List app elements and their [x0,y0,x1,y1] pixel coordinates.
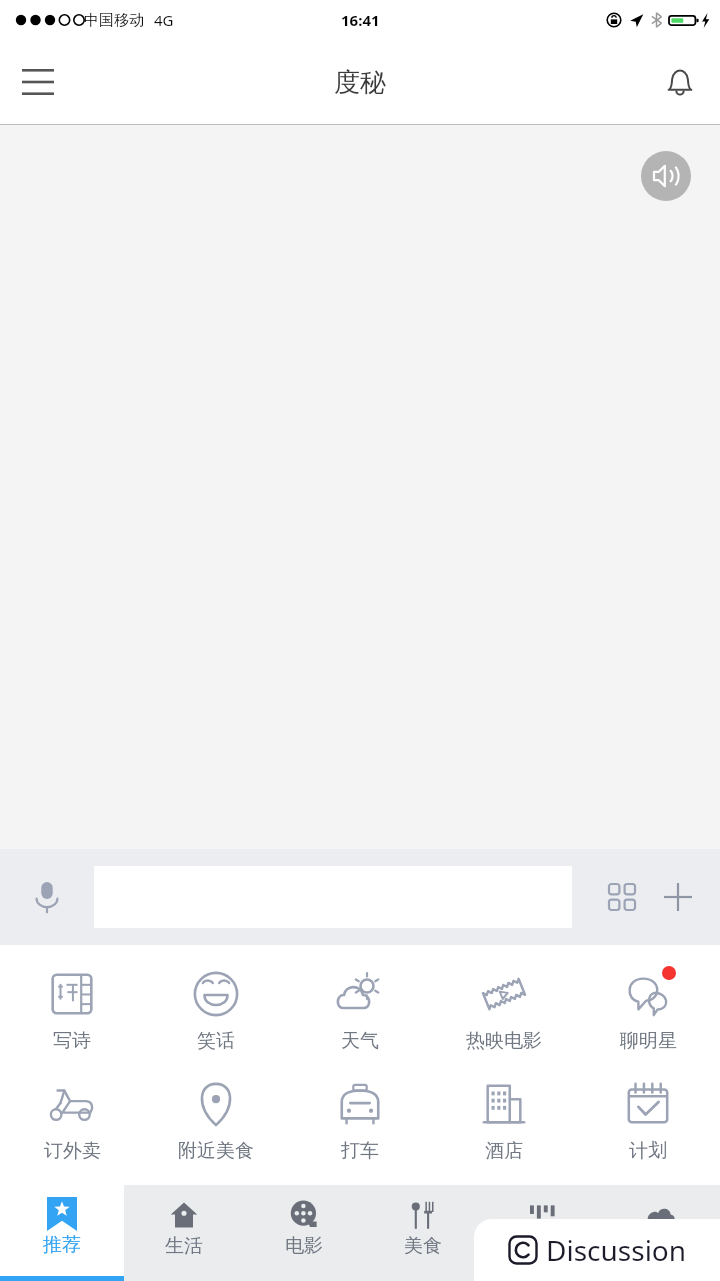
button[interactable]: 美食 [363,1185,482,1281]
button[interactable]: 聊明星 [576,959,720,1059]
button[interactable]: 更多 [601,1185,720,1281]
button[interactable]: 写诗 [0,959,144,1059]
button[interactable]: 计划 [576,1069,720,1169]
button[interactable]: 打车 [288,1069,432,1169]
staticText: 度秘 [334,66,386,99]
button[interactable]: Mute [641,151,691,201]
button[interactable]: 天气 [288,959,432,1059]
button[interactable]: 附近美食 [144,1069,288,1169]
button[interactable]: 热映电影 [432,959,576,1059]
staticText: 订外卖 [44,1139,101,1163]
staticText: 音乐 [523,1234,561,1258]
staticText: 天气 [341,1029,379,1053]
button[interactable]: 酒店 [432,1069,576,1169]
button[interactable]: More [650,869,706,925]
button[interactable]: 推荐 [0,1185,124,1281]
button[interactable]: Discussion [474,1219,720,1281]
button[interactable]: Menu [8,52,68,112]
button[interactable]: 生活 [124,1185,244,1281]
staticText: 计划 [629,1139,667,1163]
button[interactable]: Notifications [650,52,710,112]
staticText: 打车 [341,1139,379,1163]
staticText: 更多 [642,1234,680,1258]
button[interactable]: Voice input [14,864,80,930]
button[interactable]: 音乐 [482,1185,601,1281]
button[interactable]: 订外卖 [0,1069,144,1169]
staticText: 推荐 [43,1233,81,1257]
staticText: 生活 [165,1234,203,1258]
staticText: 4G [154,10,174,30]
staticText: 中国移动 [84,11,144,30]
staticText: 笑话 [197,1029,235,1053]
staticText: 聊明星 [620,1029,677,1053]
button[interactable]: Apps [594,869,650,925]
staticText: 电影 [285,1234,323,1258]
staticText: 美食 [404,1234,442,1258]
staticText: 附近美食 [178,1139,254,1163]
staticText: 16:41 [341,10,380,30]
staticText: 酒店 [485,1139,523,1163]
staticText: Discussion [546,1231,687,1269]
button[interactable]: 笑话 [144,959,288,1059]
staticText: 写诗 [53,1029,91,1053]
staticText: 热映电影 [466,1029,542,1053]
button[interactable]: 电影 [244,1185,363,1281]
